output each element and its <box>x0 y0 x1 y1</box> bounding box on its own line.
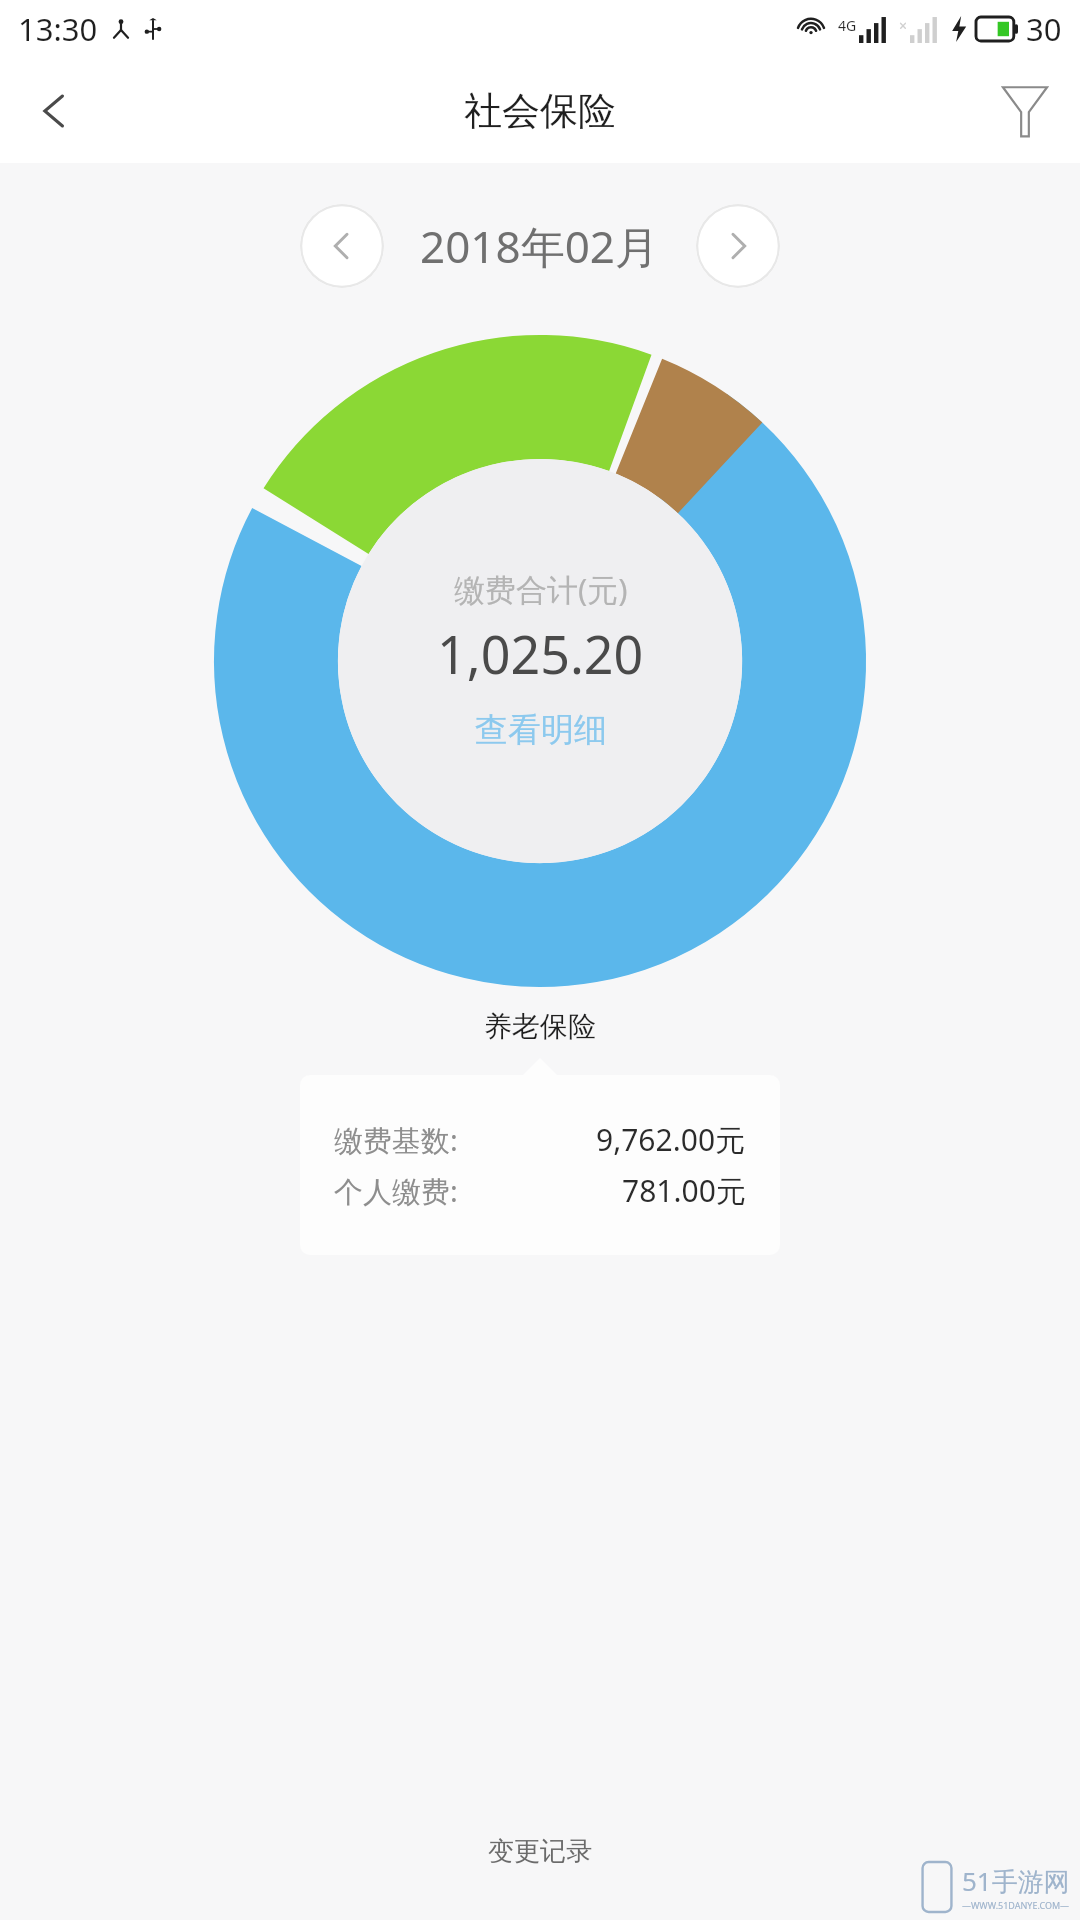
staticText: 个人缴费: <box>334 1171 458 1211</box>
button[interactable]: Next month <box>696 204 780 288</box>
staticText: 4G <box>838 16 857 35</box>
button[interactable]: 查看明细 <box>465 705 617 755</box>
button[interactable]: Filter <box>970 58 1080 163</box>
staticText: 社会保险 <box>464 87 616 135</box>
staticText: 缴费合计(元) <box>454 568 628 610</box>
staticText: 缴费基数: <box>334 1120 458 1160</box>
staticText: 查看明细 <box>475 709 607 751</box>
staticText: 2018年02月 <box>420 216 660 276</box>
staticText: 9,762.00元 <box>596 1119 746 1160</box>
button[interactable]: 缴费基数: <box>300 1075 780 1255</box>
staticText: 1,025.20 <box>437 618 644 689</box>
staticText: 变更记录 <box>488 1835 592 1868</box>
staticText: 13:30 <box>18 8 98 50</box>
staticText: × <box>899 16 908 35</box>
staticText: 781.00元 <box>622 1170 746 1211</box>
button[interactable]: 变更记录 <box>0 1819 1080 1884</box>
staticText: —WWW.51DANYE.COM— <box>962 1899 1070 1911</box>
staticText: 养老保险 <box>0 1009 1080 1044</box>
button[interactable]: Previous month <box>300 204 384 288</box>
staticText: 30 <box>1026 8 1062 50</box>
staticText: 51手游网 <box>962 1863 1070 1899</box>
button[interactable]: Back <box>0 58 110 163</box>
